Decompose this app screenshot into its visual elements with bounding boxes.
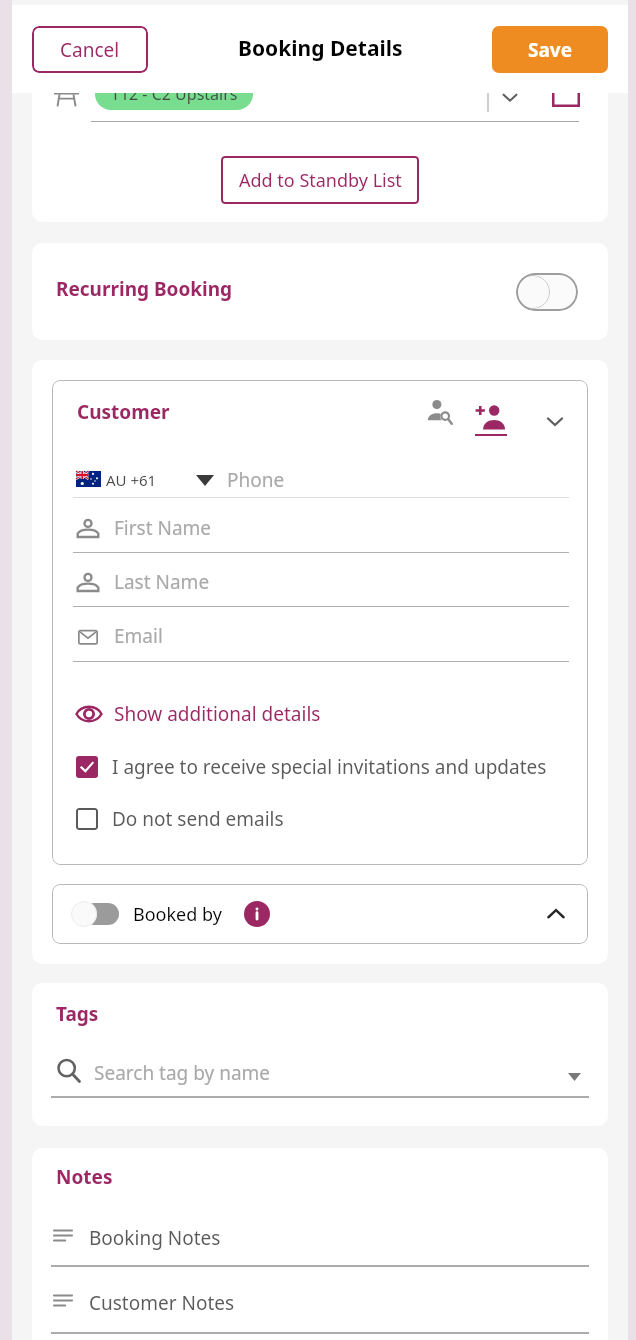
button[interactable]: Clear table xyxy=(549,80,583,114)
staticText: Customer xyxy=(77,399,170,425)
button[interactable]: Cancel xyxy=(32,26,148,73)
button[interactable]: Booked by toggle xyxy=(52,884,588,944)
staticText: Recurring Booking xyxy=(56,276,233,302)
staticText: T12 - C2 Upstairs xyxy=(111,83,238,105)
staticText: Add to Standby List xyxy=(239,168,402,193)
button[interactable]: Add to Standby List xyxy=(221,156,419,204)
staticText: Booking Details xyxy=(238,34,403,63)
staticText: Last Name xyxy=(114,569,210,595)
staticText: AU +61 xyxy=(106,470,157,490)
staticText: Booking Notes xyxy=(89,1225,221,1251)
staticText: Save xyxy=(528,37,573,63)
button[interactable]: T12 - C2 Upstairs xyxy=(95,78,253,110)
button[interactable]: Save xyxy=(492,26,608,73)
button[interactable]: Search tag by name xyxy=(51,1049,589,1095)
button[interactable]: Customer notes xyxy=(51,1286,589,1332)
staticText: Search tag by name xyxy=(94,1060,271,1086)
button[interactable]: Last Name xyxy=(73,560,569,612)
staticText: Cancel xyxy=(60,37,120,63)
button[interactable]: First Name xyxy=(73,506,569,558)
button[interactable]: Do not send emails xyxy=(76,806,284,832)
button[interactable]: Search customer xyxy=(419,391,461,433)
staticText: Notes xyxy=(56,1164,113,1190)
staticText: First Name xyxy=(114,515,212,541)
staticText: Booked by xyxy=(133,902,222,927)
button[interactable]: Expand table xyxy=(493,80,527,114)
staticText: Tags xyxy=(56,1001,99,1027)
staticText: Do not send emails xyxy=(112,806,284,832)
button[interactable]: Email xyxy=(73,614,569,666)
button[interactable]: Booking notes xyxy=(51,1220,589,1266)
staticText: Phone xyxy=(227,467,285,493)
button[interactable]: Recurring booking toggle xyxy=(516,273,578,311)
button[interactable]: Booked by toggle xyxy=(71,901,119,927)
staticText: Customer Notes xyxy=(89,1290,235,1316)
button[interactable]: I agree to receive special invitations a… xyxy=(76,754,547,780)
staticText: Email xyxy=(114,623,163,649)
button[interactable]: Add customer xyxy=(469,396,511,438)
staticText: Show additional details xyxy=(114,701,321,727)
staticText: I agree to receive special invitations a… xyxy=(112,754,547,780)
button[interactable]: Show additional details xyxy=(76,700,321,728)
button[interactable]: Collapse customer xyxy=(534,400,576,442)
